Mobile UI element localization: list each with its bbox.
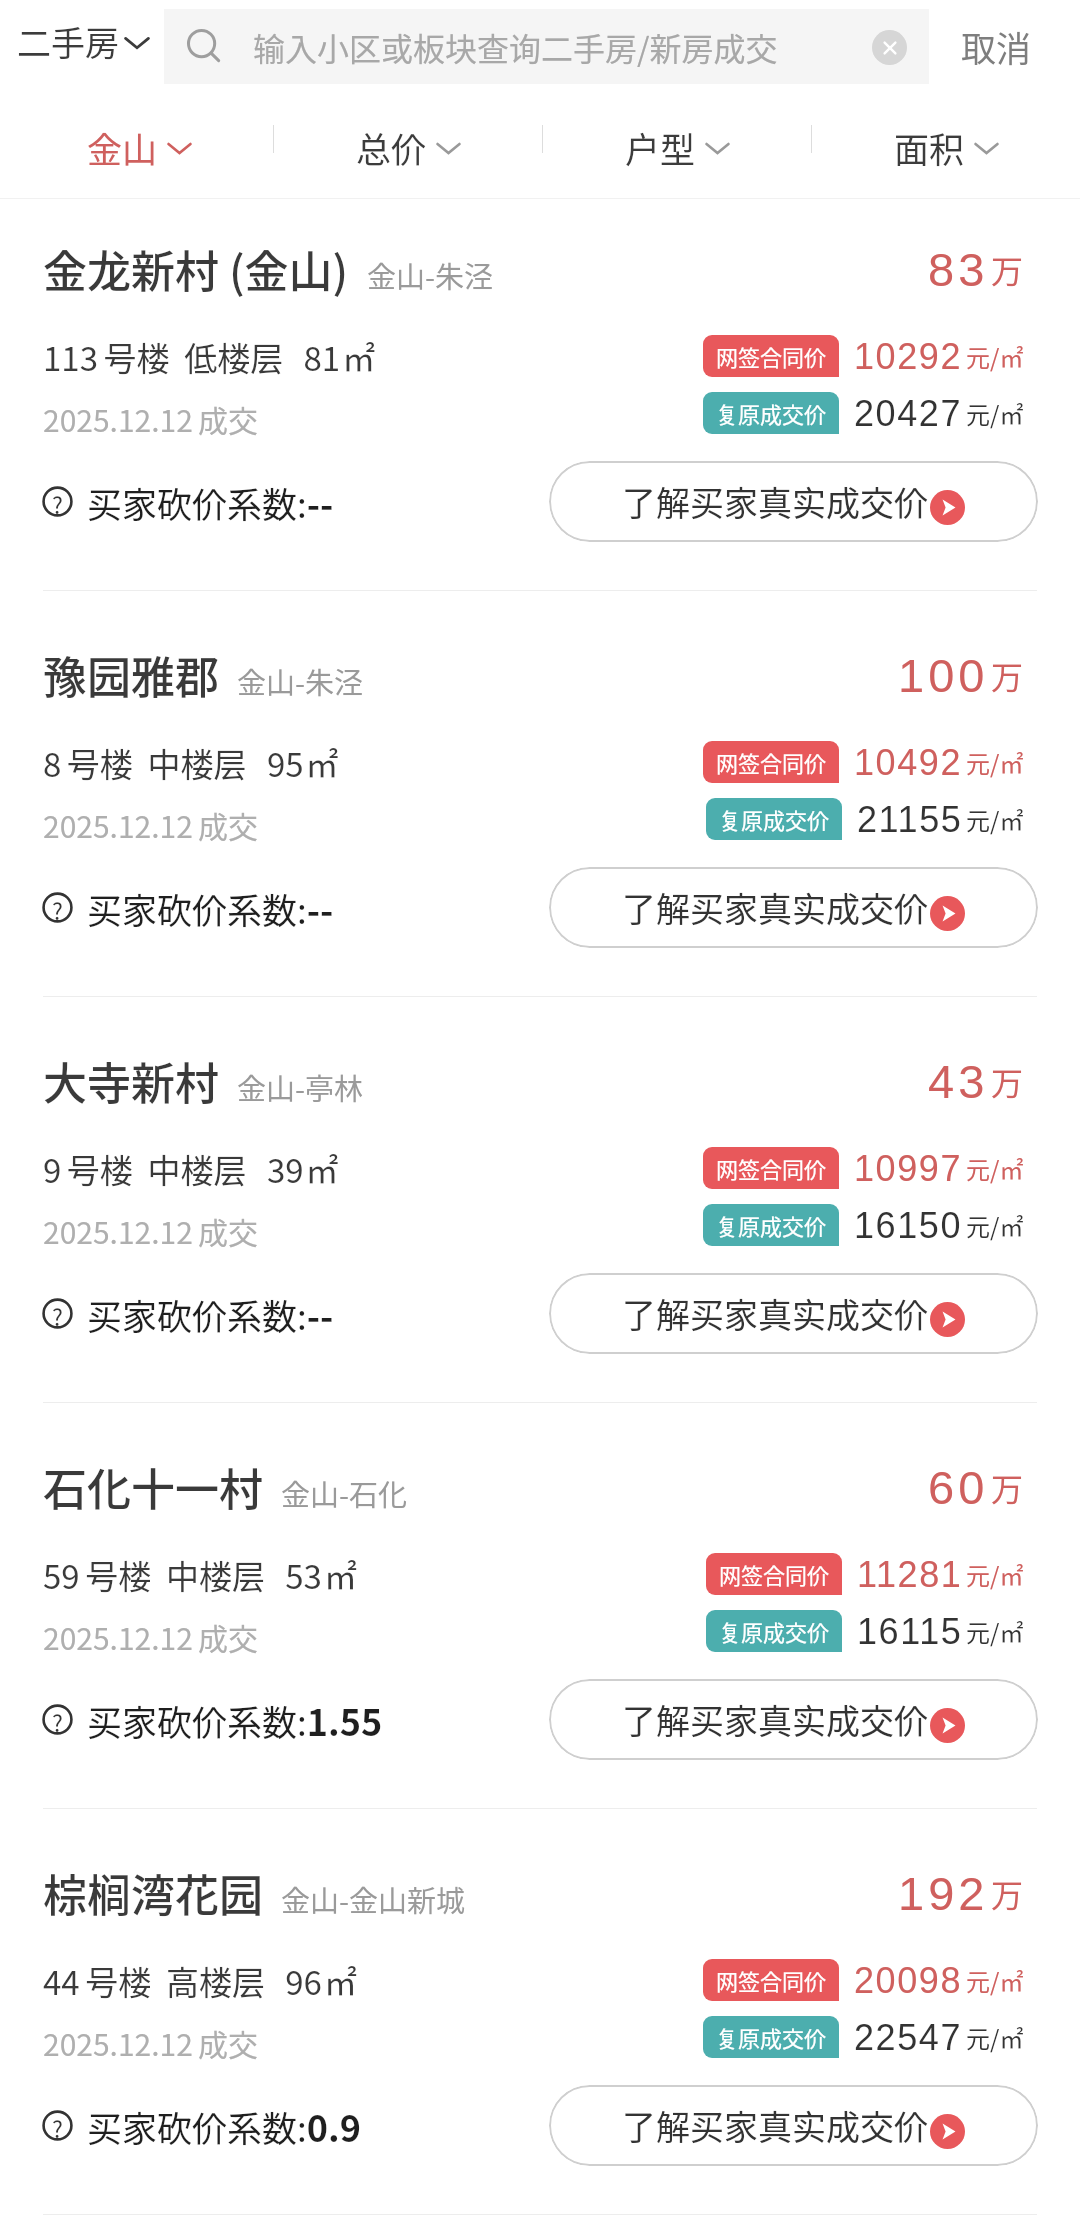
- staticText: 9 号楼 中楼层 39 ㎡: [43, 1145, 339, 1193]
- staticText: 万: [991, 246, 1024, 292]
- button[interactable]: 金龙新村 (金山): [0, 199, 1080, 590]
- staticText: 总价: [356, 122, 427, 173]
- staticText: 元/㎡: [966, 1963, 1024, 1998]
- button[interactable]: 大寺新村: [0, 997, 1080, 1402]
- button[interactable]: 了解买家真实成交价: [549, 1273, 1038, 1354]
- staticText: 22547: [854, 2017, 963, 2057]
- staticText: 59 号楼 中楼层 53 ㎡: [43, 1551, 357, 1599]
- button[interactable]: Clear search: [872, 30, 907, 65]
- staticText: 金山-石化: [281, 1472, 408, 1514]
- staticText: 金山-朱泾: [367, 254, 494, 296]
- staticText: 网签合同价: [719, 1558, 830, 1590]
- staticText: 网签合同价: [716, 746, 827, 778]
- staticText: 100: [898, 649, 989, 702]
- staticText: 豫园雅郡: [43, 643, 219, 707]
- staticText: 买家砍价系数:1.55: [87, 1694, 383, 1746]
- button[interactable]: 豫园雅郡: [0, 591, 1080, 996]
- button[interactable]: 户型: [543, 92, 811, 185]
- staticText: ?: [52, 2111, 63, 2140]
- staticText: 10492: [854, 742, 963, 782]
- staticText: 2025.12.12 成交: [43, 1209, 258, 1252]
- staticText: 元/㎡: [966, 1208, 1024, 1243]
- staticText: 了解买家真实成交价: [622, 2101, 928, 2150]
- staticText: ?: [52, 487, 63, 516]
- staticText: 了解买家真实成交价: [622, 477, 928, 526]
- staticText: 万: [991, 1058, 1024, 1104]
- staticText: 金山-亭林: [237, 1066, 364, 1108]
- staticText: 户型: [625, 122, 696, 173]
- button[interactable]: 了解买家真实成交价: [549, 461, 1038, 542]
- staticText: 21155: [857, 799, 963, 839]
- staticText: 16115: [857, 1611, 963, 1651]
- staticText: 2025.12.12 成交: [43, 1615, 258, 1658]
- staticText: 83: [928, 243, 989, 296]
- button[interactable]: 输入小区或板块查询二手房/新房成交: [164, 9, 929, 84]
- button[interactable]: 石化十一村: [0, 1403, 1080, 1808]
- button[interactable]: 了解买家真实成交价: [549, 1679, 1038, 1760]
- staticText: 取消: [961, 21, 1032, 72]
- staticText: 20427: [854, 393, 963, 433]
- button[interactable]: 取消: [961, 0, 1032, 92]
- staticText: 43: [928, 1055, 989, 1108]
- staticText: 10292: [854, 336, 963, 376]
- staticText: 面积: [894, 122, 965, 173]
- staticText: 大寺新村: [43, 1049, 219, 1113]
- staticText: 买家砍价系数:--: [87, 1288, 334, 1340]
- staticText: 元/㎡: [966, 1151, 1024, 1186]
- staticText: 网签合同价: [716, 1152, 827, 1184]
- staticText: 元/㎡: [966, 745, 1024, 780]
- staticText: 192: [898, 1867, 989, 1920]
- staticText: 金山-金山新城: [281, 1878, 466, 1920]
- staticText: 买家砍价系数:0.9: [87, 2100, 361, 2152]
- button[interactable]: 了解买家真实成交价: [549, 2085, 1038, 2166]
- staticText: 复原成交价: [716, 397, 827, 429]
- staticText: ?: [52, 1705, 63, 1734]
- button[interactable]: 金山: [5, 92, 273, 185]
- staticText: 网签合同价: [716, 1964, 827, 1996]
- staticText: 元/㎡: [966, 396, 1024, 431]
- staticText: 8 号楼 中楼层 95 ㎡: [43, 739, 339, 787]
- staticText: 16150: [854, 1205, 963, 1245]
- staticText: 10997: [854, 1148, 963, 1188]
- staticText: 万: [991, 1870, 1024, 1916]
- staticText: 元/㎡: [966, 1557, 1024, 1592]
- staticText: 113 号楼 低楼层 81 ㎡: [43, 333, 376, 381]
- staticText: 二手房: [17, 17, 119, 66]
- staticText: 输入小区或板块查询二手房/新房成交: [253, 24, 778, 70]
- staticText: 44 号楼 高楼层 96 ㎡: [43, 1957, 357, 2005]
- staticText: 60: [928, 1461, 989, 1514]
- staticText: 20098: [854, 1960, 963, 2000]
- staticText: 万: [991, 1464, 1024, 1510]
- button[interactable]: 二手房: [17, 0, 150, 92]
- staticText: 金龙新村 (金山): [43, 237, 349, 301]
- button[interactable]: 面积: [812, 92, 1080, 185]
- staticText: 复原成交价: [716, 2021, 827, 2053]
- staticText: 复原成交价: [719, 803, 830, 835]
- staticText: 棕榈湾花园: [43, 1861, 263, 1925]
- button[interactable]: 总价: [274, 92, 542, 185]
- staticText: ?: [52, 893, 63, 922]
- staticText: 元/㎡: [966, 339, 1024, 374]
- staticText: 复原成交价: [716, 1209, 827, 1241]
- staticText: 复原成交价: [719, 1615, 830, 1647]
- staticText: 元/㎡: [966, 2020, 1024, 2055]
- button[interactable]: 了解买家真实成交价: [549, 867, 1038, 948]
- staticText: 2025.12.12 成交: [43, 2021, 258, 2064]
- staticText: 2025.12.12 成交: [43, 803, 258, 846]
- staticText: 买家砍价系数:--: [87, 882, 334, 934]
- staticText: ?: [52, 1299, 63, 1328]
- staticText: 网签合同价: [716, 340, 827, 372]
- staticText: 元/㎡: [966, 1614, 1024, 1649]
- staticText: 元/㎡: [966, 802, 1024, 837]
- staticText: 金山-朱泾: [237, 660, 364, 702]
- staticText: 万: [991, 652, 1024, 698]
- staticText: 11281: [857, 1554, 963, 1594]
- staticText: 了解买家真实成交价: [622, 883, 928, 932]
- button[interactable]: 棕榈湾花园: [0, 1809, 1080, 2214]
- staticText: 石化十一村: [43, 1455, 263, 1519]
- staticText: 了解买家真实成交价: [622, 1695, 928, 1744]
- staticText: 金山: [87, 122, 158, 173]
- staticText: 2025.12.12 成交: [43, 397, 258, 440]
- staticText: 了解买家真实成交价: [622, 1289, 928, 1338]
- staticText: 买家砍价系数:--: [87, 476, 334, 528]
